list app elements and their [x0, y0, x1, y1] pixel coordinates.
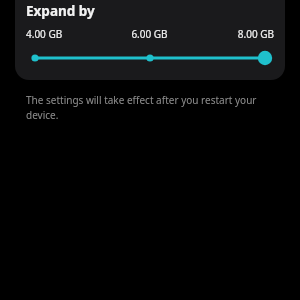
staticText: Expand by	[26, 2, 95, 20]
button[interactable]: Expand by amount slider	[26, 47, 274, 69]
staticText: 6.00 GB	[108, 27, 191, 41]
button[interactable]: Expand by	[15, 0, 285, 80]
staticText: 8.00 GB	[191, 27, 274, 41]
staticText: The settings will take effect after you …	[26, 93, 274, 122]
staticText: 4.00 GB	[26, 27, 108, 41]
